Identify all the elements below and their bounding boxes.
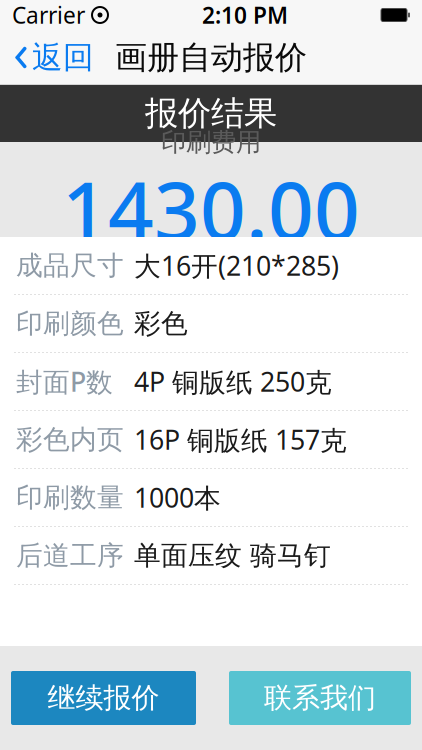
staticText: 大16开(210*285) [134, 248, 339, 283]
staticText: 16P 铜版纸 157克 [134, 422, 347, 457]
staticText: 1430.00 [62, 156, 360, 262]
staticText: 成品尺寸 [16, 249, 124, 282]
staticText: 2:10 PM [202, 0, 288, 30]
button[interactable]: 继续报价 [11, 671, 196, 725]
staticText: 4P 铜版纸 250克 [134, 364, 332, 399]
staticText: 印刷颜色 [16, 307, 124, 340]
button[interactable]: 联系我们 [229, 671, 411, 725]
staticText: 印刷费用 [161, 127, 261, 158]
button[interactable]: 返回 [4, 31, 104, 84]
staticText: Carrier [12, 0, 85, 30]
staticText: 封面P数 [16, 364, 113, 399]
staticText: 印刷数量 [16, 481, 124, 514]
staticText: 画册自动报价 [115, 38, 307, 77]
staticText: 1000本 [134, 480, 221, 515]
staticText: 联系我们 [264, 681, 376, 715]
staticText: 单面压纹 骑马钉 [134, 539, 331, 572]
staticText: 报价结果 [145, 93, 277, 134]
staticText: 返回 [32, 39, 94, 76]
staticText: 彩色 [134, 307, 188, 340]
staticText: 继续报价 [47, 681, 159, 715]
staticText: 后道工序 [16, 539, 124, 572]
staticText: 彩色内页 [16, 423, 124, 456]
